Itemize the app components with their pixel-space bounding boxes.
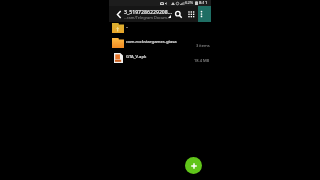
button[interactable]: Search	[172, 6, 185, 22]
button[interactable]: com.rockstargames.gtasa	[109, 37, 211, 52]
staticText: 3 items	[196, 43, 210, 48]
button[interactable]: Add	[185, 157, 202, 174]
button[interactable]: ..	[109, 22, 211, 37]
staticText: ..	[126, 24, 210, 30]
staticText: 18.4 MB	[194, 58, 210, 63]
staticText: …ram/Telegram Documents	[124, 15, 172, 20]
button[interactable]: Grid view	[185, 6, 198, 22]
staticText: 8:11	[199, 0, 208, 6]
staticText: com.rockstargames.gtasa	[126, 39, 196, 45]
staticText: GTA_V.apk	[126, 54, 194, 60]
staticText: 3_5197286229208…	[124, 8, 172, 15]
button[interactable]: GTA_V.apk	[109, 52, 211, 67]
button[interactable]: Navigate up	[109, 6, 124, 22]
staticText: 62%	[185, 0, 194, 6]
button[interactable]: More options	[198, 6, 211, 22]
